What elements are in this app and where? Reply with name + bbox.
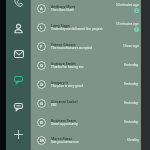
staticText: Gregory Ji bbox=[51, 80, 68, 85]
button[interactable]: New chat bbox=[7, 125, 30, 143]
staticText: Great opportunity bbox=[51, 122, 78, 126]
staticText: Business Team bbox=[51, 118, 76, 123]
button[interactable]: Messages bbox=[7, 98, 30, 116]
staticText: A bbox=[40, 6, 43, 12]
staticText: The plan is very good bbox=[51, 84, 83, 88]
button[interactable]: Calls bbox=[7, 0, 30, 11]
button[interactable]: Contacts bbox=[7, 19, 30, 37]
staticText: Marco Russo bbox=[51, 136, 73, 141]
staticText: G bbox=[40, 101, 44, 107]
staticText: Yesterday bbox=[124, 63, 139, 67]
staticText: The client liked bbox=[51, 8, 74, 12]
staticText: M bbox=[40, 138, 44, 144]
button[interactable]: G bbox=[31, 57, 141, 76]
staticText: Franco Giorgio bbox=[51, 42, 76, 47]
staticText: See you tomorrow bbox=[51, 140, 79, 144]
staticText: Yesterday we delivered the project bbox=[51, 27, 103, 31]
staticText: G bbox=[40, 82, 44, 88]
staticText: Monday bbox=[127, 138, 139, 142]
staticText: L bbox=[40, 25, 43, 31]
button[interactable]: A bbox=[31, 0, 141, 19]
staticText: OK! bbox=[51, 103, 57, 107]
button[interactable]: G bbox=[31, 95, 141, 114]
staticText: Gustavo Smith bbox=[51, 61, 76, 66]
staticText: 1 hour ago bbox=[123, 44, 139, 48]
staticText: G bbox=[40, 63, 44, 69]
staticText: Yesterday bbox=[124, 82, 139, 86]
staticText: Giovanni Lasbel bbox=[51, 99, 78, 104]
staticText: B bbox=[40, 120, 43, 126]
staticText: 10 minutes ago bbox=[116, 3, 139, 7]
staticText: Yesterday bbox=[124, 101, 139, 105]
staticText: 1 bbox=[136, 28, 138, 32]
staticText: 2 bbox=[136, 9, 138, 13]
button[interactable]: Chats bbox=[7, 71, 30, 89]
button[interactable]: L bbox=[31, 19, 141, 38]
staticText: Larry Siggs bbox=[51, 23, 70, 28]
button[interactable]: F bbox=[31, 38, 141, 57]
staticText: 15 minutes ago bbox=[116, 22, 139, 26]
staticText: The manufacturer accepted bbox=[51, 46, 93, 50]
staticText: Yesterday bbox=[124, 120, 139, 124]
button[interactable]: G bbox=[31, 76, 141, 95]
staticText: Thanks for having me bbox=[51, 65, 84, 69]
button[interactable]: M bbox=[31, 133, 141, 150]
button[interactable]: B bbox=[31, 114, 141, 133]
staticText: F bbox=[40, 44, 43, 50]
staticText: Anthony Mury bbox=[51, 4, 76, 9]
button[interactable]: Mail bbox=[7, 45, 30, 63]
